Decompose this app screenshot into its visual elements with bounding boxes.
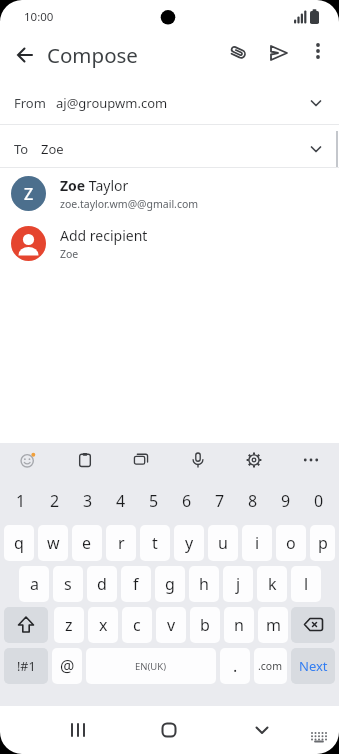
button[interactable]: i — [242, 525, 272, 561]
button[interactable]: Add recipient — [0, 218, 339, 268]
staticText: b — [200, 614, 210, 636]
button[interactable] — [10, 443, 46, 477]
button[interactable]: 8 — [236, 477, 269, 525]
button[interactable]: m — [258, 607, 288, 643]
button[interactable]: p — [310, 525, 335, 561]
button[interactable]: t — [140, 525, 170, 561]
staticText: 3 — [83, 490, 93, 512]
button[interactable]: 4 — [104, 477, 137, 525]
staticText: d — [97, 573, 107, 595]
button[interactable]: EN(UK) — [86, 648, 216, 684]
button[interactable] — [219, 33, 259, 73]
staticText: 6 — [182, 490, 192, 512]
staticText: 1 — [16, 490, 26, 512]
button[interactable]: 2 — [38, 477, 71, 525]
staticText: Zoe — [60, 247, 79, 261]
button[interactable] — [67, 443, 103, 477]
button[interactable]: . — [220, 648, 250, 684]
button[interactable]: 1 — [4, 477, 38, 525]
staticText: zoe.taylor.wm@@gmail.com — [60, 197, 199, 211]
button[interactable]: y — [174, 525, 204, 561]
staticText: m — [266, 614, 281, 636]
staticText: c — [133, 614, 141, 636]
button[interactable]: h — [189, 566, 219, 602]
staticText: .com — [258, 659, 283, 673]
button[interactable]: o — [276, 525, 306, 561]
button[interactable]: 6 — [170, 477, 203, 525]
button[interactable]: To — [0, 125, 339, 167]
staticText: Zoe Taylor — [60, 176, 129, 195]
button[interactable]: !#1 — [4, 648, 48, 684]
button[interactable]: a — [19, 566, 49, 602]
button[interactable] — [236, 443, 272, 477]
staticText: k — [268, 573, 277, 595]
staticText: 5 — [149, 490, 159, 512]
button[interactable]: x — [88, 607, 118, 643]
button[interactable]: n — [224, 607, 254, 643]
button[interactable] — [180, 443, 216, 477]
button[interactable]: w — [38, 525, 68, 561]
button[interactable]: r — [106, 525, 136, 561]
button[interactable]: 0 — [302, 477, 335, 525]
button[interactable]: 7 — [203, 477, 236, 525]
button[interactable]: u — [208, 525, 238, 561]
button[interactable]: Next — [291, 648, 335, 684]
staticText: j — [236, 573, 241, 595]
button[interactable] — [9, 39, 41, 71]
button[interactable]: k — [257, 566, 287, 602]
button[interactable]: j — [223, 566, 253, 602]
staticText: s — [64, 573, 72, 595]
staticText: To — [14, 140, 29, 158]
button[interactable]: 9 — [269, 477, 302, 525]
button[interactable]: .com — [254, 648, 287, 684]
staticText: 10:00 — [24, 9, 54, 25]
staticText: 2 — [50, 490, 60, 512]
button[interactable]: b — [190, 607, 220, 643]
staticText: . — [233, 655, 238, 677]
button[interactable]: e — [72, 525, 102, 561]
staticText: Z — [24, 183, 34, 205]
staticText: i — [255, 532, 260, 554]
staticText: Compose — [47, 41, 138, 69]
button[interactable] — [4, 607, 48, 643]
staticText: y — [185, 532, 194, 554]
button[interactable] — [259, 33, 299, 73]
staticText: w — [47, 532, 60, 554]
staticText: n — [234, 614, 244, 636]
button[interactable] — [242, 710, 282, 750]
staticText: a — [30, 573, 39, 595]
button[interactable]: g — [155, 566, 185, 602]
button[interactable] — [293, 443, 329, 477]
button[interactable] — [58, 710, 98, 750]
staticText: e — [82, 532, 92, 554]
staticText: x — [99, 614, 108, 636]
button[interactable]: @ — [52, 648, 82, 684]
button[interactable]: From — [0, 78, 339, 124]
button[interactable]: l — [291, 566, 321, 602]
button[interactable] — [300, 33, 336, 69]
button[interactable] — [123, 443, 159, 477]
staticText: @ — [60, 655, 75, 677]
staticText: h — [199, 573, 209, 595]
button[interactable]: z — [54, 607, 84, 643]
button[interactable]: v — [156, 607, 186, 643]
staticText: 8 — [248, 490, 258, 512]
button[interactable] — [291, 607, 335, 643]
button[interactable]: 5 — [137, 477, 170, 525]
button[interactable] — [149, 710, 189, 750]
staticText: v — [167, 614, 176, 636]
button[interactable]: s — [53, 566, 83, 602]
button[interactable]: Z — [0, 168, 339, 218]
staticText: q — [14, 532, 24, 554]
button[interactable] — [304, 724, 334, 750]
button[interactable]: f — [121, 566, 151, 602]
button[interactable]: d — [87, 566, 117, 602]
staticText: l — [304, 573, 309, 595]
staticText: Next — [299, 657, 328, 675]
staticText: 0 — [314, 490, 324, 512]
button[interactable]: 3 — [71, 477, 104, 525]
button[interactable]: q — [4, 525, 34, 561]
staticText: 9 — [281, 490, 291, 512]
staticText: 4 — [116, 490, 126, 512]
button[interactable]: c — [122, 607, 152, 643]
